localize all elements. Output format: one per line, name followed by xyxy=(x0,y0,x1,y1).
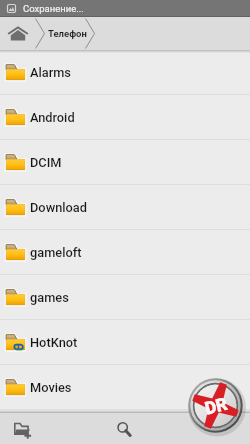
button[interactable]: Movies xyxy=(0,365,250,410)
button[interactable]: HotKnot xyxy=(0,320,250,365)
staticText: Телефон xyxy=(48,28,87,39)
staticText: HotKnot xyxy=(30,335,78,350)
staticText: games xyxy=(30,290,69,305)
staticText: Music xyxy=(30,425,65,440)
button[interactable]: Music xyxy=(0,410,250,444)
staticText: DCIM xyxy=(30,155,62,170)
button[interactable]: Alarms xyxy=(0,50,250,95)
button[interactable]: DCIM xyxy=(0,140,250,185)
button[interactable]: gameloft xyxy=(0,230,250,275)
staticText: gameloft xyxy=(30,245,82,260)
button[interactable]: Home xyxy=(0,17,36,50)
staticText: Alarms xyxy=(30,65,71,80)
button[interactable]: games xyxy=(0,275,250,320)
staticText: Download xyxy=(30,200,87,215)
staticText: Movies xyxy=(30,380,72,395)
button[interactable]: Android xyxy=(0,95,250,140)
button[interactable]: Телефон xyxy=(48,17,88,50)
staticText: Сохранение... xyxy=(23,3,84,14)
button[interactable]: Download xyxy=(0,185,250,230)
staticText: DR xyxy=(203,394,229,418)
button[interactable]: New folder xyxy=(4,413,40,444)
button[interactable]: Search xyxy=(108,413,140,444)
staticText: Android xyxy=(30,110,75,125)
